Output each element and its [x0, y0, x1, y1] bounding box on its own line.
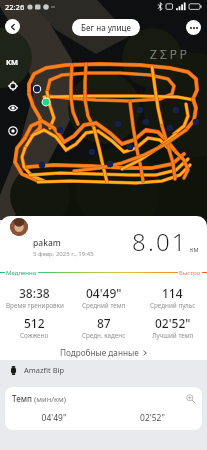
staticText: Медленно [6, 269, 37, 277]
staticText: Быстро [179, 269, 201, 277]
staticText: Средний пульс [150, 301, 196, 310]
button[interactable]: Бег на улице [72, 19, 140, 36]
staticText: Бег на улице [81, 22, 131, 33]
button[interactable]: Back [5, 19, 20, 34]
staticText: 87 [97, 315, 111, 331]
button[interactable]: More options [186, 20, 201, 35]
button[interactable]: Locate [6, 79, 19, 92]
button[interactable] [10, 218, 28, 236]
staticText: 512 [24, 315, 45, 331]
button[interactable]: Подробные данные [54, 346, 154, 359]
staticText: 02'52" [103, 412, 202, 424]
button[interactable]: Amazfit Bip [0, 363, 207, 377]
staticText: 04'49" [86, 285, 122, 301]
staticText: pakam [33, 237, 61, 249]
staticText: Amazfit Bip [24, 365, 65, 375]
staticText: км [190, 245, 199, 254]
staticText: 8.01 [132, 225, 188, 258]
staticText: KM [6, 57, 19, 67]
staticText: 38:38 [19, 285, 50, 301]
staticText: Лучший темп [152, 331, 194, 340]
button[interactable]: Center map [6, 124, 19, 137]
staticText: 114 [162, 285, 183, 301]
staticText: Средн. каденс [82, 331, 126, 340]
staticText: Темп [12, 393, 32, 404]
staticText: Время тренировки [6, 301, 64, 310]
staticText: Подробные данные [60, 347, 139, 358]
button[interactable]: Show layers [6, 101, 19, 114]
staticText: Сожжено [20, 331, 49, 340]
button[interactable]: Zoom chart [185, 393, 196, 404]
staticText: 02'52" [155, 315, 191, 331]
staticText: (мин/км) [34, 394, 67, 404]
staticText: Средний темп [82, 301, 126, 310]
staticText: 22:26 [5, 2, 25, 12]
staticText: 04'49" [5, 412, 103, 424]
staticText: 5 февр. 2025 г., 19:45 [33, 250, 94, 258]
staticText: ZΣPP [150, 46, 190, 62]
